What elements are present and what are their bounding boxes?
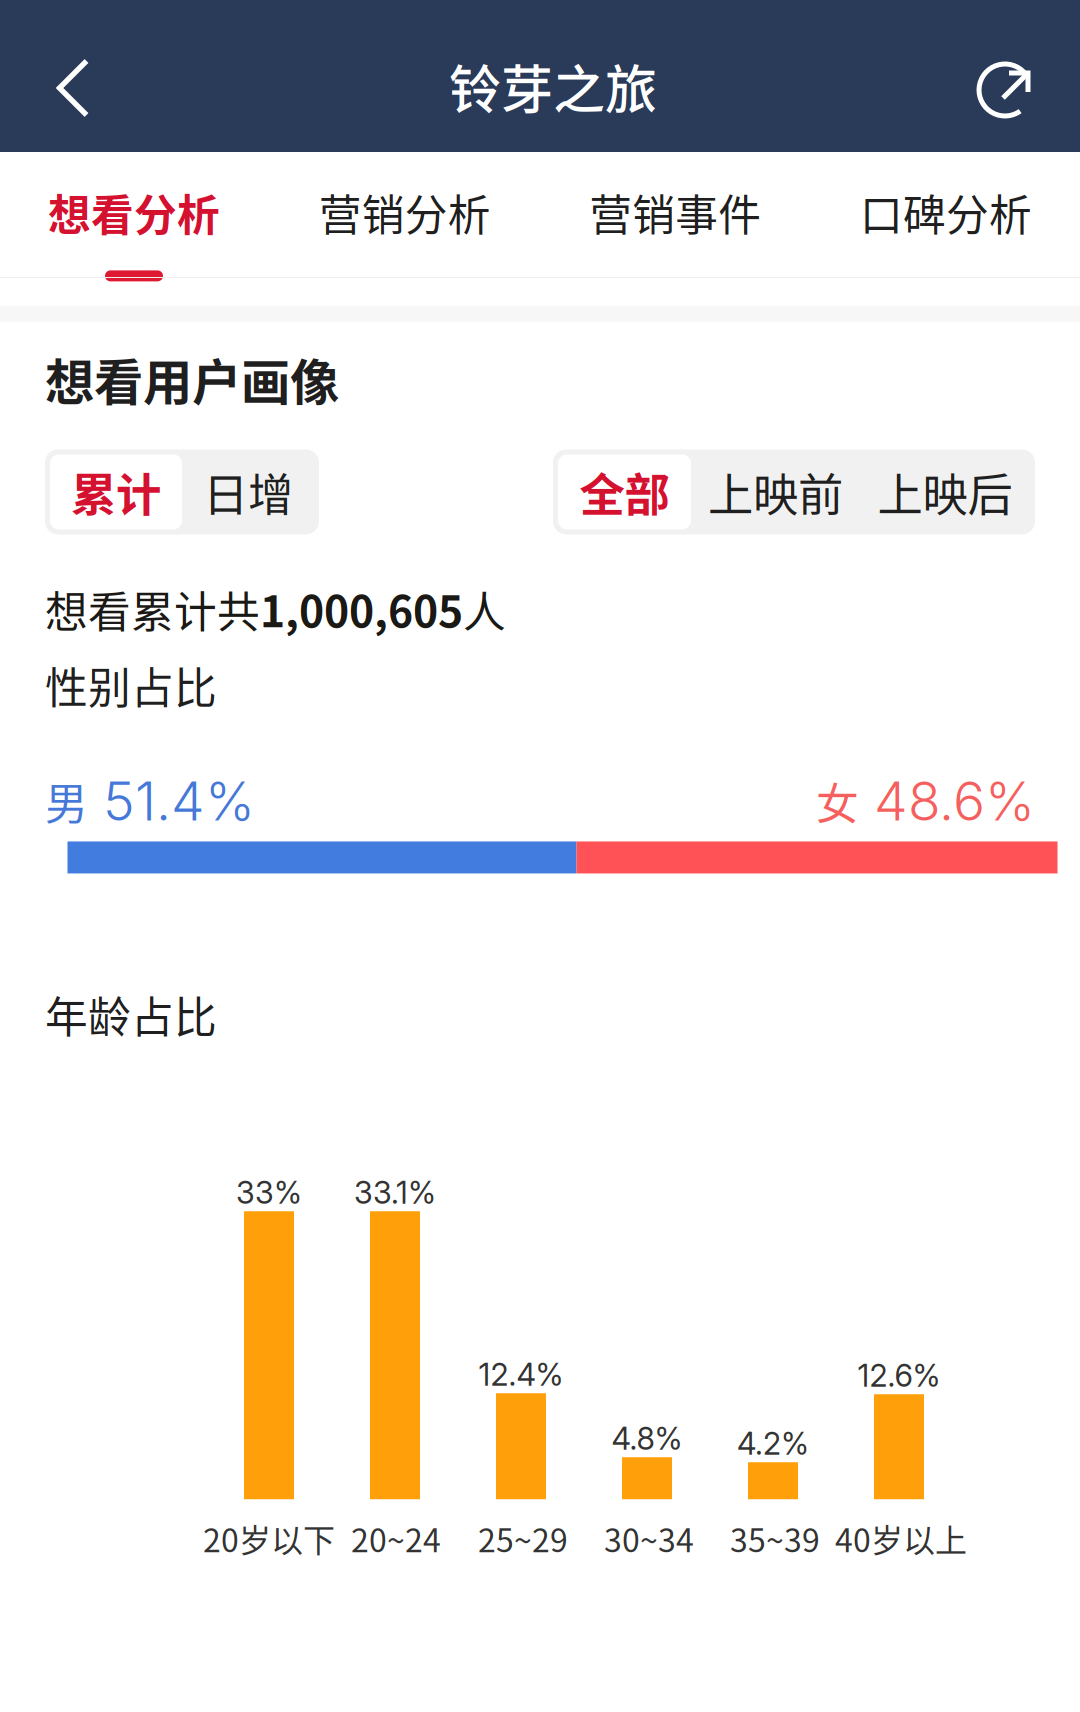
- staticText: 51.4%: [88, 769, 255, 833]
- button[interactable]: 上映前: [691, 454, 860, 529]
- staticText: 全部: [579, 459, 669, 525]
- staticText: 30~34: [604, 1515, 694, 1561]
- staticText: 33.1%: [354, 1174, 436, 1211]
- staticText: 女: [816, 770, 859, 832]
- button[interactable]: Share: [934, 12, 1080, 164]
- staticText: 4.2%: [737, 1425, 809, 1462]
- staticText: 40岁以上: [835, 1515, 967, 1561]
- staticText: 营销事件: [589, 182, 761, 243]
- staticText: 20~24: [351, 1515, 441, 1561]
- button[interactable]: Back: [0, 12, 146, 164]
- staticText: 想看用户画像: [45, 343, 339, 414]
- staticText: 上映后: [877, 459, 1012, 525]
- button[interactable]: 营销分析: [280, 152, 530, 277]
- button[interactable]: 全部: [558, 454, 691, 529]
- staticText: 25~29: [478, 1515, 568, 1561]
- staticText: 33%: [236, 1174, 302, 1211]
- staticText: 12.4%: [478, 1356, 563, 1393]
- staticText: 铃芽之旅: [449, 48, 657, 124]
- staticText: 口碑分析: [860, 182, 1032, 243]
- button[interactable]: 想看分析: [9, 152, 259, 277]
- staticText: 4.8%: [611, 1420, 682, 1457]
- button[interactable]: 口碑分析: [821, 152, 1071, 277]
- button[interactable]: 累计: [50, 454, 182, 529]
- staticText: 想看累计共1,000,605人: [45, 578, 506, 639]
- staticText: 20岁以下: [203, 1515, 335, 1561]
- button[interactable]: 营销事件: [550, 152, 800, 277]
- staticText: 营销分析: [319, 182, 491, 243]
- button[interactable]: 日增: [182, 454, 314, 529]
- button[interactable]: 上映后: [860, 454, 1030, 529]
- staticText: 12.6%: [857, 1357, 940, 1394]
- staticText: 48.6%: [859, 769, 1035, 833]
- staticText: 想看分析: [48, 182, 220, 243]
- staticText: 35~39: [730, 1515, 820, 1561]
- staticText: 日增: [203, 459, 293, 525]
- staticText: 男: [45, 770, 88, 832]
- staticText: 性别占比: [45, 654, 217, 716]
- staticText: 累计: [71, 459, 161, 525]
- staticText: 年龄占比: [45, 983, 217, 1045]
- staticText: 上映前: [708, 459, 843, 525]
